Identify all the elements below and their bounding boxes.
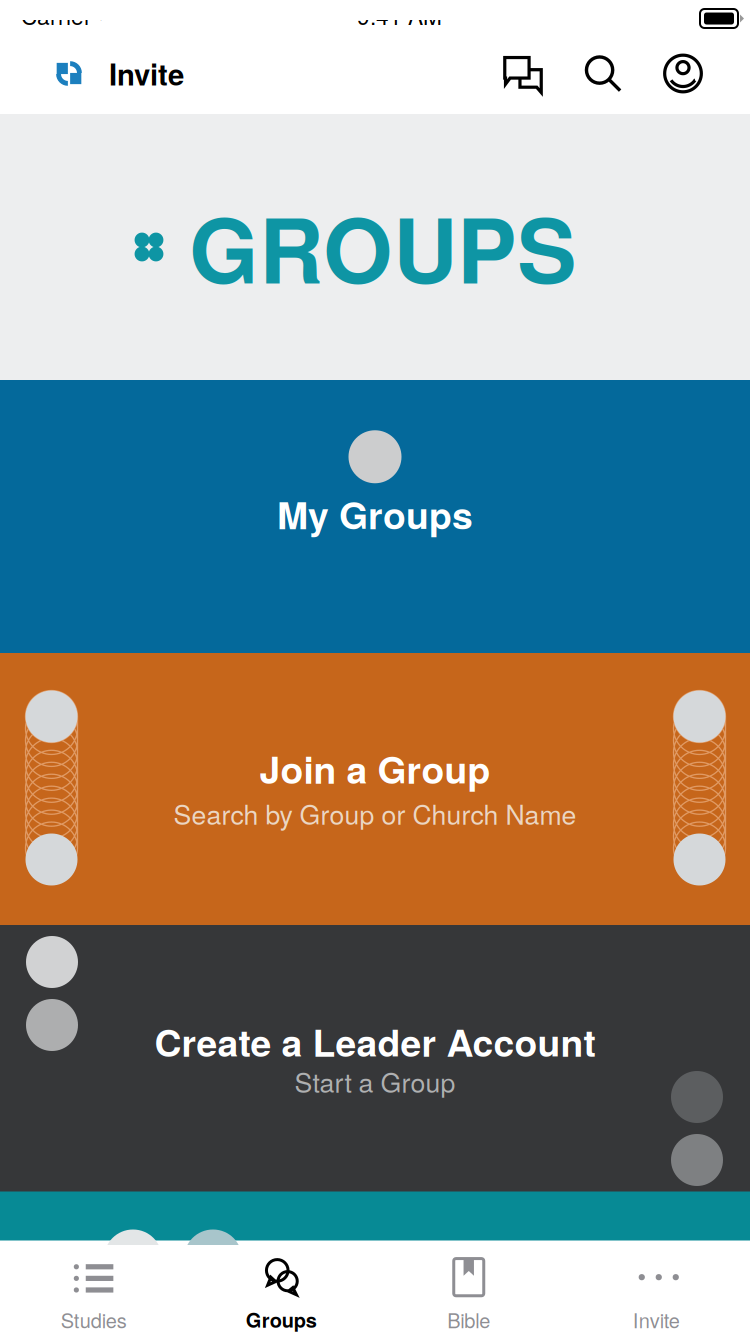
staticText: Carrier [21,0,92,31]
staticText: 9:41 AM [357,0,442,31]
button[interactable]: Join a Group [0,653,750,925]
button[interactable]: Invite [562,1243,750,1334]
staticText: Bible [447,1305,490,1334]
staticText: Studies [61,1305,127,1334]
staticText: Start a Group [294,1062,455,1100]
button[interactable]: Studies [0,1243,187,1334]
staticText: Groups [246,1305,317,1334]
staticText: Invite [633,1305,680,1334]
button[interactable]: Account [643,42,723,104]
staticText: My Groups [277,487,473,541]
button[interactable]: Groups [187,1243,375,1334]
staticText: Search by Group or Church Name [173,794,576,832]
staticText: Join a Group [259,742,490,795]
button[interactable]: Search [563,42,643,104]
button[interactable]: Create a Leader Account [0,925,750,1196]
staticText: Invite [109,52,184,94]
staticText: GROUPS [189,183,577,311]
button[interactable] [0,1196,750,1245]
staticText: Create a Leader Account [154,1015,595,1068]
button[interactable]: My Groups [0,380,750,653]
button[interactable]: Bible [375,1243,562,1334]
button[interactable]: Invite [55,52,184,94]
button[interactable]: Messages [483,42,563,104]
